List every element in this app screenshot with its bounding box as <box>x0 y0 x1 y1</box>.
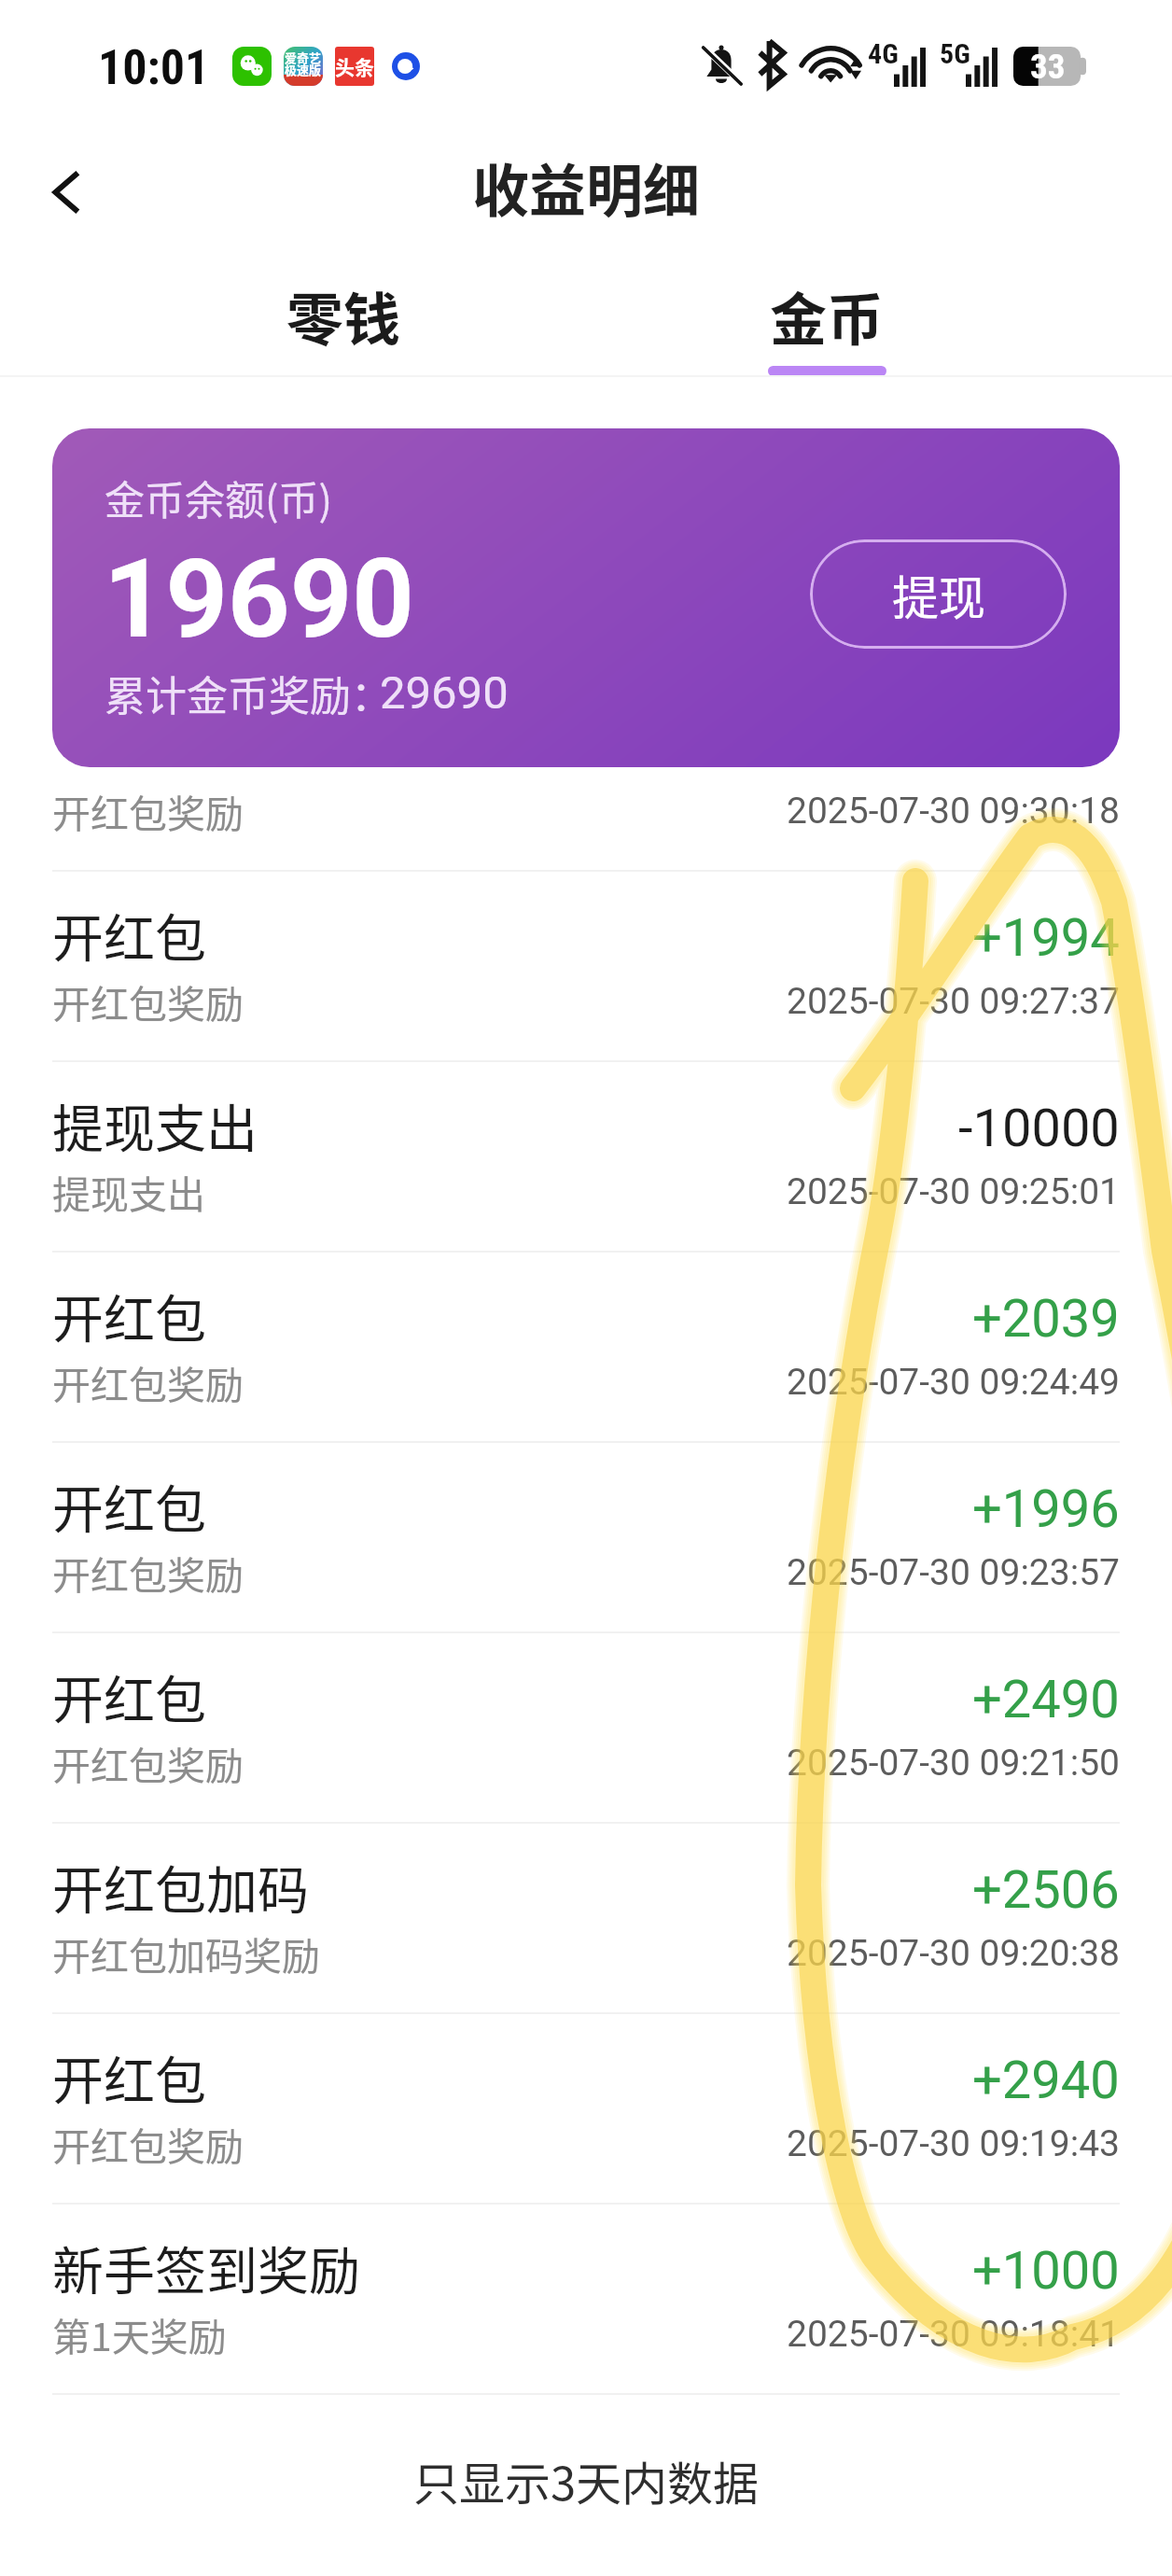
staticText: 4G <box>868 37 899 70</box>
staticText: 只显示3天内数据 <box>0 2447 1172 2513</box>
staticText: 零钱 <box>286 274 401 357</box>
staticText: 累计金币奖励： <box>105 664 392 723</box>
button[interactable]: 开红包 <box>0 1253 1172 1441</box>
staticText: 开红包奖励 <box>52 2116 244 2171</box>
staticText: 金币 <box>770 274 885 357</box>
staticText: 开红包奖励 <box>52 973 244 1029</box>
staticText: 新手签到奖励 <box>52 2230 361 2304</box>
staticText: -10000 <box>958 1098 1120 1159</box>
staticText: +2490 <box>972 1669 1120 1730</box>
staticText: 开红包 <box>52 2039 207 2114</box>
staticText: 33 <box>1030 47 1066 86</box>
staticText: 19690 <box>104 536 414 663</box>
button[interactable]: 提现支出 <box>0 1062 1172 1251</box>
staticText: 2025-07-30 09:19:43 <box>787 2122 1120 2165</box>
staticText: +2940 <box>972 2050 1120 2111</box>
staticText: 开红包加码 <box>52 1849 310 1924</box>
button[interactable]: 新手签到奖励 <box>0 2205 1172 2393</box>
staticText: 29690 <box>380 666 509 720</box>
button[interactable]: 零钱 <box>203 250 483 375</box>
staticText: +1994 <box>972 907 1120 969</box>
staticText: 开红包 <box>52 897 207 972</box>
staticText: 金币余额(币) <box>105 469 333 526</box>
staticText: 2025-07-30 09:20:38 <box>787 1932 1120 1975</box>
staticText: 开红包奖励 <box>52 1354 244 1409</box>
button[interactable]: 提现 <box>810 539 1067 649</box>
button[interactable]: Back <box>21 146 110 235</box>
staticText: 提现 <box>892 561 985 628</box>
staticText: 极速版 <box>285 61 322 78</box>
staticText: 开红包奖励 <box>52 1545 244 1600</box>
staticText: 2025-07-30 09:30:18 <box>787 790 1120 833</box>
staticText: 2025-07-30 09:21:50 <box>787 1742 1120 1785</box>
staticText: 开红包奖励 <box>52 783 244 838</box>
staticText: 收益明细 <box>472 146 701 228</box>
staticText: 爱奇艺 <box>285 49 322 66</box>
staticText: 2025-07-30 09:23:57 <box>787 1551 1120 1594</box>
staticText: 2025-07-30 09:24:49 <box>787 1361 1120 1404</box>
staticText: 开红包 <box>52 1659 207 1733</box>
staticText: 开红包奖励 <box>52 1735 244 1790</box>
button[interactable]: 开红包 <box>0 2014 1172 2203</box>
staticText: 提现支出 <box>52 1087 258 1162</box>
button[interactable]: 开红包 <box>0 1633 1172 1822</box>
button[interactable]: 开红包 <box>0 872 1172 1060</box>
staticText: +1996 <box>972 1478 1120 1540</box>
button[interactable]: 金币余额(币) <box>52 428 1120 767</box>
staticText: 开红包加码奖励 <box>52 1925 320 1981</box>
staticText: +2506 <box>972 1859 1120 1921</box>
button[interactable]: 金币 <box>687 250 967 375</box>
staticText: +2039 <box>972 1288 1120 1350</box>
staticText: 第1天奖励 <box>52 2306 227 2361</box>
button[interactable]: 开红包 <box>0 1443 1172 1631</box>
staticText: 2025-07-30 09:18:41 <box>787 2313 1120 2356</box>
button[interactable]: 开红包加码 <box>0 1824 1172 2012</box>
staticText: 头条 <box>335 52 374 80</box>
staticText: 开红包 <box>52 1468 207 1543</box>
staticText: 10:01 <box>98 39 210 96</box>
button[interactable]: 开红包奖励 <box>0 681 1172 870</box>
staticText: 开红包 <box>52 1278 207 1352</box>
staticText: +1000 <box>972 2240 1120 2302</box>
staticText: 2025-07-30 09:25:01 <box>787 1170 1120 1213</box>
staticText: 提现支出 <box>52 1164 205 1219</box>
staticText: 5G <box>940 37 970 70</box>
staticText: 2025-07-30 09:27:37 <box>787 980 1120 1023</box>
